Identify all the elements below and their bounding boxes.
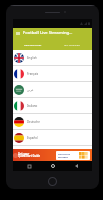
- button[interactable]: عربي: [13, 82, 92, 98]
- staticText: Football Live Streaming...: [23, 30, 73, 36]
- staticText: Español: [27, 136, 38, 140]
- button[interactable]: Open navigation menu: [14, 29, 22, 38]
- button[interactable]: Français: [13, 66, 92, 82]
- staticText: عربي: [27, 88, 34, 91]
- button[interactable]: Deutsche: [13, 114, 92, 130]
- staticText: Français: [27, 72, 39, 76]
- staticText: English: [27, 56, 37, 60]
- button[interactable]: NEW CHANNEL: [13, 38, 52, 50]
- staticText: ANALYTICS MASTERY: [58, 153, 71, 159]
- button[interactable]: Portugues: [13, 146, 92, 162]
- button[interactable]: Italiano: [13, 98, 92, 114]
- button[interactable]: Recent apps: [25, 162, 33, 170]
- staticText: Italiano: [27, 104, 38, 108]
- staticText: ALL CHANNEL: [64, 43, 80, 46]
- button[interactable]: Back: [72, 162, 80, 170]
- staticText: NEW CHANNEL: [24, 43, 42, 46]
- staticText: Get your QuickStart Guide: [18, 152, 41, 158]
- button[interactable]: Get your QuickStart Guide: [13, 149, 92, 161]
- button[interactable]: Home: [49, 162, 57, 170]
- button[interactable]: English: [13, 50, 92, 66]
- button[interactable]: ALL CHANNEL: [52, 38, 92, 50]
- staticText: Deutsche: [27, 120, 40, 124]
- button[interactable]: Español: [13, 130, 92, 146]
- staticText: Portugues: [27, 152, 42, 156]
